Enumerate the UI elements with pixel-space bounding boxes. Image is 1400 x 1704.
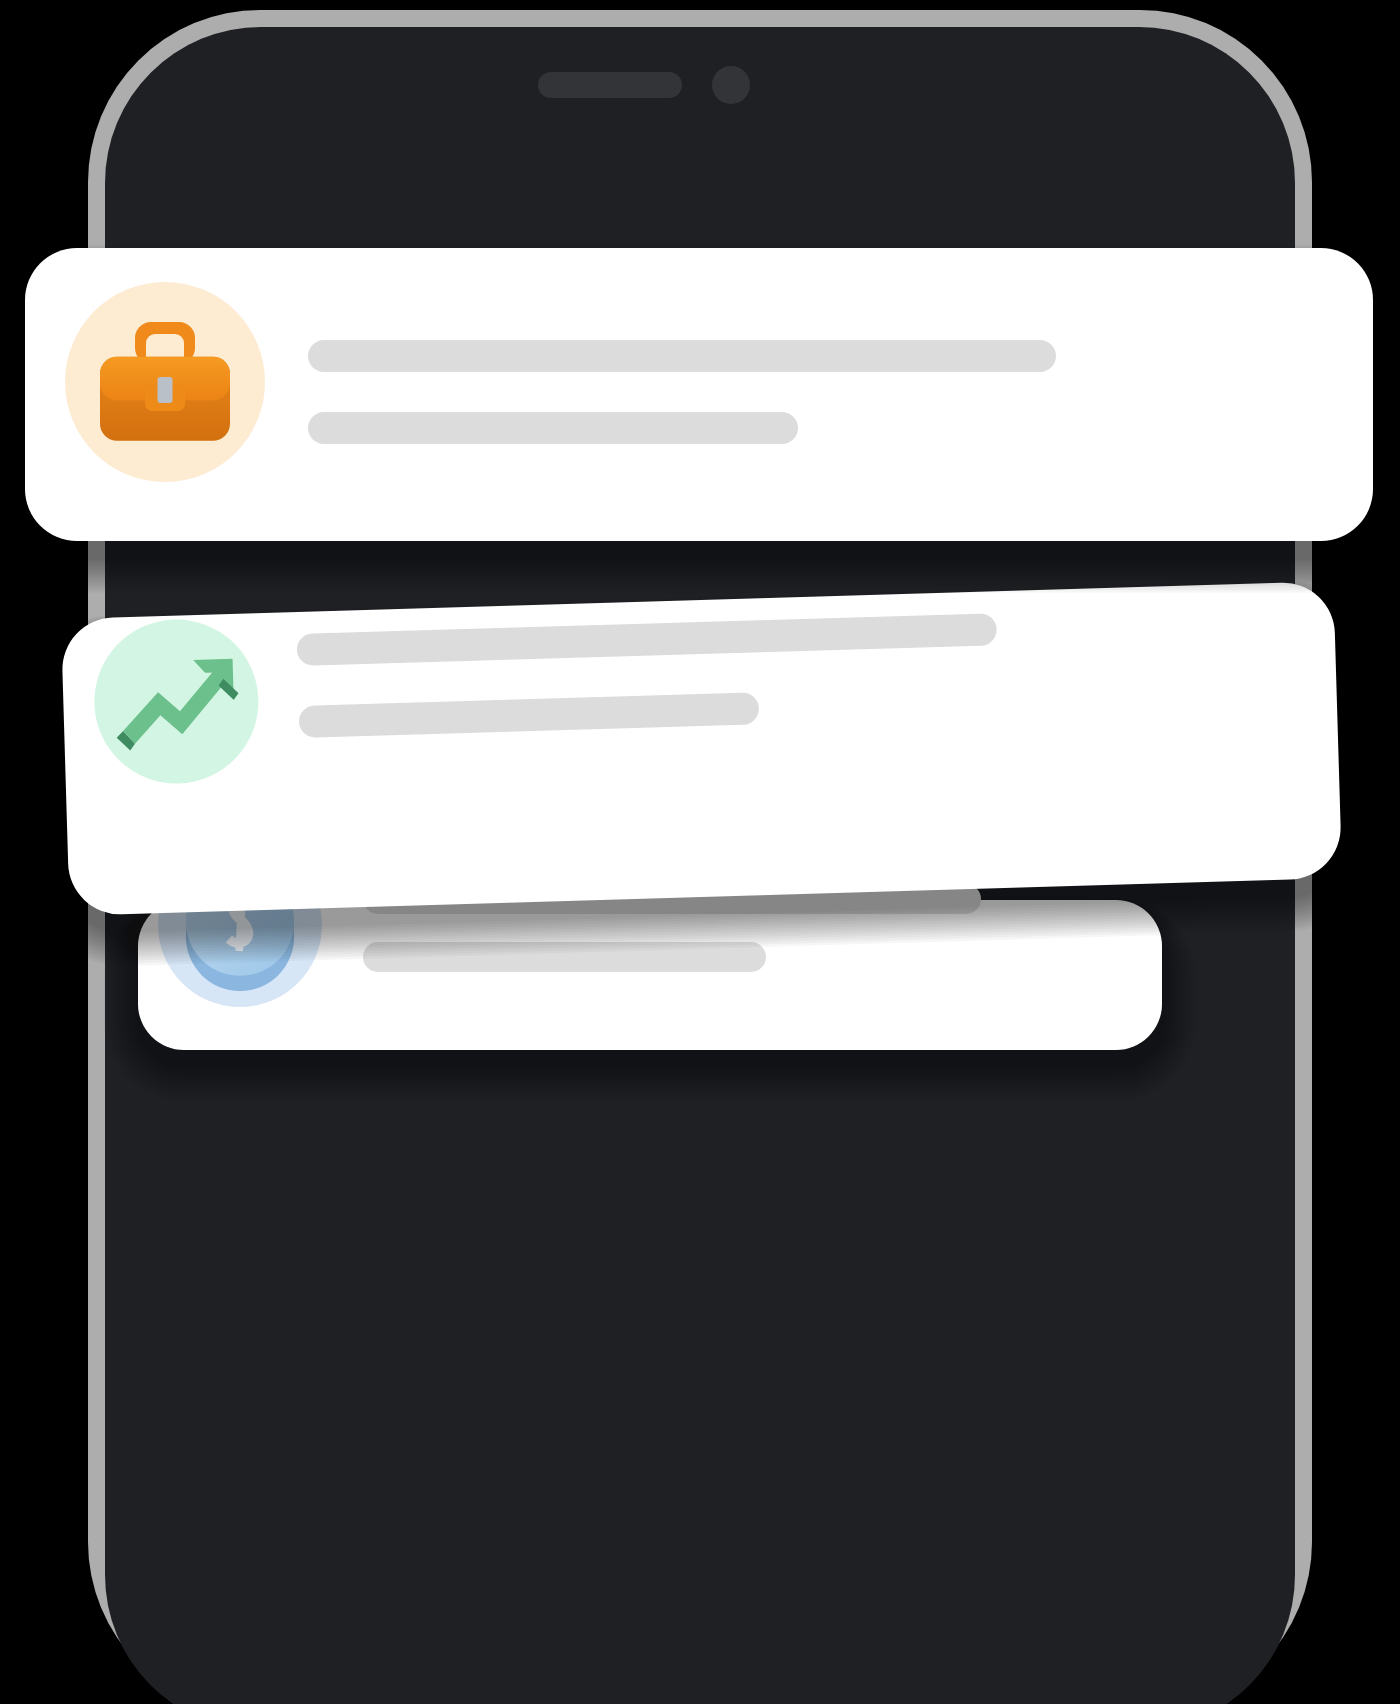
button[interactable]: Money category item bbox=[138, 900, 1162, 1050]
button[interactable]: Work category item bbox=[25, 248, 1373, 541]
button[interactable]: Growth category item bbox=[65, 600, 1338, 897]
